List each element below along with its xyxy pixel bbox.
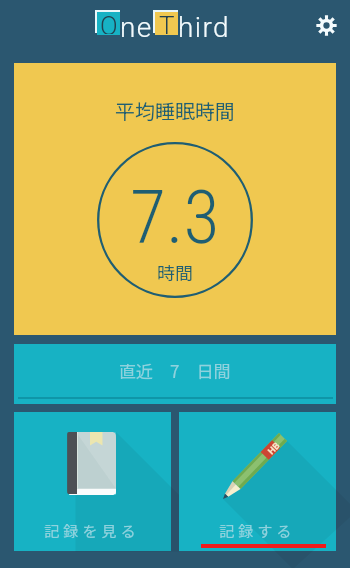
staticText: T: [159, 11, 175, 34]
staticText: 平均睡眠時間: [115, 96, 235, 125]
staticText: 7.3: [130, 174, 220, 261]
button[interactable]: 直近 7 日間: [14, 344, 336, 404]
button[interactable]: Settings: [311, 10, 341, 40]
button[interactable]: 平均睡眠時間: [14, 63, 336, 335]
staticText: 時間: [157, 259, 193, 285]
staticText: O: [100, 11, 118, 34]
staticText: 記録を見る: [44, 520, 141, 542]
staticText: 記録する: [219, 520, 296, 542]
staticText: hird: [178, 11, 230, 44]
staticText: HB: [266, 440, 283, 457]
staticText: ne: [120, 11, 153, 44]
staticText: 直近 7 日間: [119, 358, 231, 383]
button[interactable]: HB: [179, 412, 336, 551]
button[interactable]: 記録を見る: [14, 412, 171, 551]
